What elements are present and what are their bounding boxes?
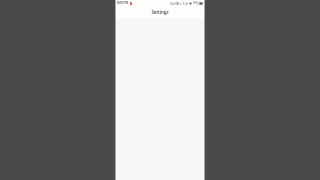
staticText: 0.6 KB/s [171,2,181,5]
button[interactable]: Settings [115,6,205,19]
staticText: Settings [151,9,169,15]
staticText: 8:09 PM [117,1,129,5]
staticText: 100 [193,1,198,5]
